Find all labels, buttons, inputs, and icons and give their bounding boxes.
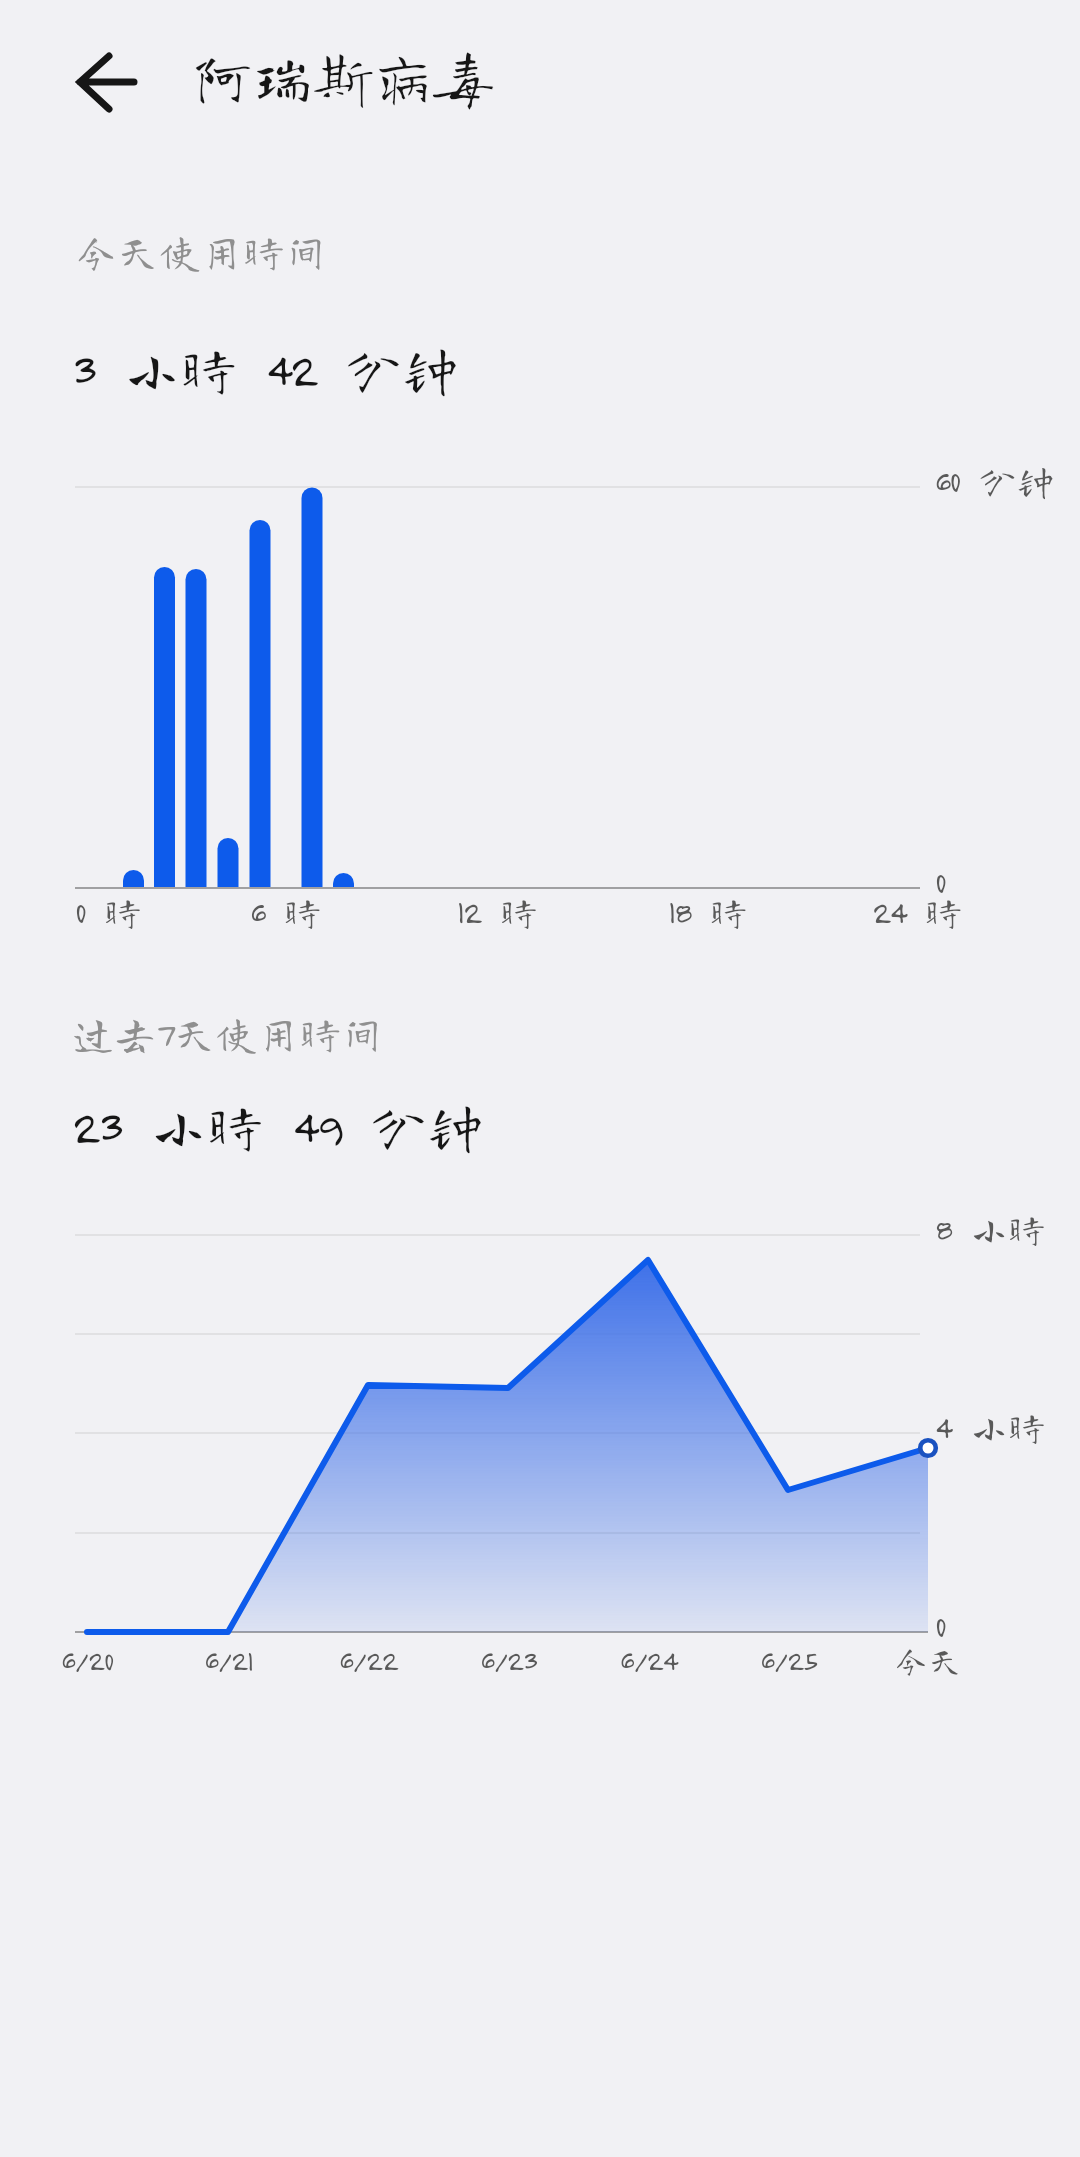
staticText: 6/21 xyxy=(204,1643,253,1677)
staticText: 阿瑞斯病毒 xyxy=(193,46,493,106)
staticText: 今天使用时间 xyxy=(75,230,328,272)
staticText: 6/25 xyxy=(760,1643,817,1677)
staticText: 6/22 xyxy=(339,1643,398,1677)
staticText: 0 时 xyxy=(75,893,143,931)
staticText: 过去7天使用时间 xyxy=(72,1012,384,1054)
staticText: 6/20 xyxy=(61,1643,113,1677)
staticText: 23 小时 49 分钟 xyxy=(72,1097,485,1154)
staticText: 6/24 xyxy=(620,1643,677,1677)
button[interactable] xyxy=(60,40,150,124)
staticText: 24 时 xyxy=(872,893,963,931)
staticText: 18 时 xyxy=(668,893,748,931)
staticText: 4 小时 xyxy=(935,1408,1046,1446)
staticText: 8 小时 xyxy=(935,1210,1047,1248)
staticText: 今天 xyxy=(894,1643,962,1677)
staticText: 3 小时 42 分钟 xyxy=(72,340,459,397)
staticText: 0 xyxy=(935,863,946,901)
staticText: 60 分钟 xyxy=(935,462,1055,500)
staticText: 0 xyxy=(935,1607,946,1645)
staticText: 12 时 xyxy=(457,893,538,931)
staticText: 6/23 xyxy=(480,1643,537,1677)
staticText: 6 时 xyxy=(250,893,322,931)
